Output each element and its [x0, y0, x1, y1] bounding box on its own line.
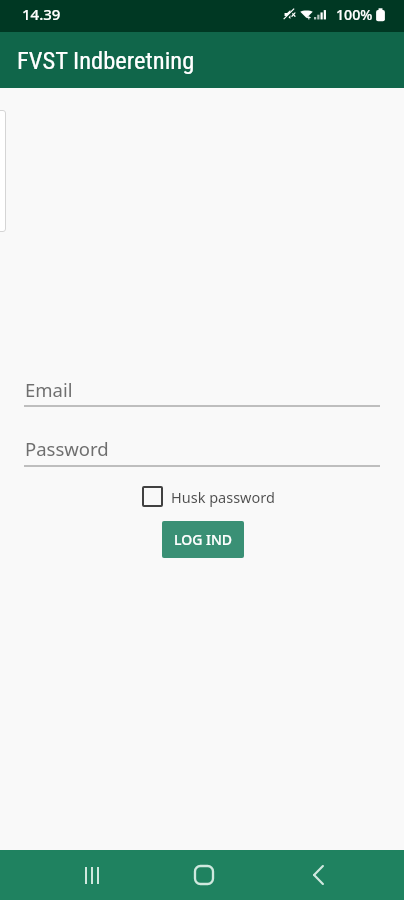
staticText: LOG IND: [174, 530, 233, 549]
button[interactable]: Back: [273, 850, 363, 900]
staticText: 14.39: [22, 4, 61, 24]
button[interactable]: Home: [159, 850, 249, 900]
button[interactable]: Husk password: [142, 486, 275, 507]
button[interactable]: Recent apps: [47, 850, 137, 900]
staticText: FVST Indberetning: [17, 46, 195, 75]
staticText: 100%: [336, 5, 373, 24]
button[interactable]: LOG IND: [162, 521, 244, 558]
staticText: Email: [25, 377, 73, 402]
staticText: Password: [25, 436, 109, 461]
staticText: Husk password: [171, 487, 275, 507]
